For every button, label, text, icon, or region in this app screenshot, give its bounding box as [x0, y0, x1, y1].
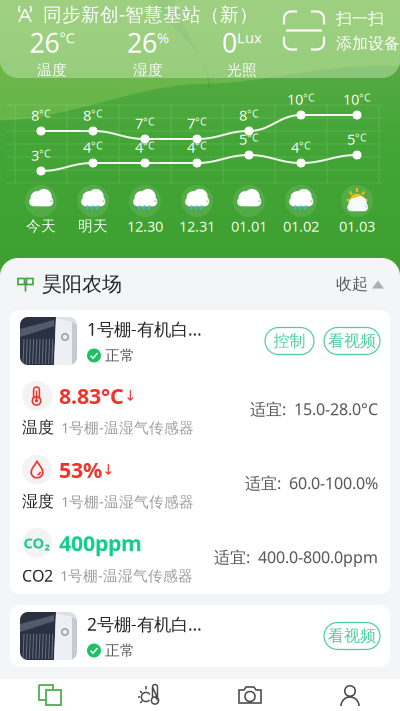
- staticText: 12.31: [179, 216, 215, 236]
- staticText: 8: [83, 105, 91, 125]
- staticText: 4: [135, 137, 143, 157]
- staticText: 正常: [105, 346, 135, 364]
- staticText: CO₂: [23, 533, 50, 553]
- staticText: 适宜: 400.0-800.0ppm: [214, 546, 378, 568]
- staticText: 温度: [37, 61, 67, 79]
- staticText: °C: [303, 90, 315, 104]
- staticText: 正常: [105, 641, 135, 659]
- button[interactable]: 环境: [100, 675, 200, 711]
- staticText: 同步新创-智慧基站（新）: [43, 2, 258, 26]
- staticText: 5: [347, 129, 355, 149]
- staticText: 添加设备: [336, 33, 400, 53]
- staticText: 扫一扫: [336, 9, 384, 28]
- staticText: 3: [31, 145, 39, 165]
- staticText: 控制: [273, 331, 305, 351]
- staticText: ↓: [102, 461, 114, 478]
- staticText: 2号棚-有机白…: [87, 612, 202, 635]
- staticText: °C: [195, 114, 207, 128]
- button[interactable]: 扫一扫: [281, 5, 400, 57]
- button[interactable]: 首页: [0, 675, 100, 711]
- staticText: 8.83°C: [59, 381, 124, 410]
- staticText: °C: [143, 138, 155, 152]
- staticText: %: [157, 28, 169, 47]
- staticText: 26: [29, 25, 59, 60]
- staticText: 26: [127, 25, 157, 60]
- button[interactable]: 监控: [200, 675, 300, 711]
- staticText: 53%: [59, 455, 102, 484]
- button[interactable]: 看视频: [324, 622, 380, 649]
- staticText: 4: [83, 137, 91, 157]
- button[interactable]: 收起: [336, 270, 384, 298]
- staticText: °C: [143, 114, 155, 128]
- staticText: 适宜: 15.0-28.0°C: [250, 398, 378, 420]
- staticText: °C: [247, 106, 259, 120]
- staticText: 7: [135, 113, 143, 133]
- staticText: 1号棚-有机白…: [87, 317, 202, 340]
- staticText: 01.02: [283, 216, 319, 236]
- staticText: 明天: [78, 217, 108, 235]
- staticText: 8: [31, 105, 39, 125]
- staticText: °C: [39, 106, 51, 120]
- button[interactable]: 看视频: [324, 327, 380, 354]
- staticText: 温度: [22, 418, 54, 437]
- staticText: °C: [59, 28, 74, 47]
- staticText: °C: [91, 106, 103, 120]
- staticText: CO2: [22, 565, 53, 586]
- staticText: 4: [187, 137, 195, 157]
- staticText: °C: [39, 146, 51, 160]
- staticText: 今天: [26, 217, 56, 235]
- staticText: 昊阳农场: [42, 272, 122, 296]
- staticText: 8: [239, 105, 247, 125]
- staticText: °C: [247, 130, 259, 144]
- staticText: 1号棚-温湿气传感器: [61, 492, 194, 511]
- staticText: 400ppm: [59, 529, 142, 557]
- staticText: 5: [239, 129, 247, 149]
- staticText: 适宜: 60.0-100.0%: [245, 472, 378, 494]
- button[interactable]: 我的: [300, 675, 400, 711]
- staticText: 01.03: [339, 216, 375, 236]
- button[interactable]: 控制: [265, 327, 314, 354]
- staticText: 10: [287, 89, 303, 109]
- staticText: Lux: [237, 28, 262, 47]
- staticText: 湿度: [133, 61, 163, 79]
- staticText: 湿度: [22, 492, 54, 511]
- staticText: 0: [222, 25, 237, 60]
- staticText: 10: [343, 89, 359, 109]
- staticText: 1号棚-温湿气传感器: [60, 566, 193, 585]
- staticText: °C: [359, 90, 371, 104]
- staticText: 4: [291, 137, 299, 157]
- staticText: 看视频: [328, 331, 376, 351]
- staticText: 光照: [227, 61, 257, 79]
- staticText: °C: [299, 138, 311, 152]
- staticText: 看视频: [328, 626, 376, 646]
- staticText: °C: [195, 138, 207, 152]
- staticText: 01.01: [231, 216, 267, 236]
- staticText: 收起: [336, 274, 368, 294]
- staticText: °C: [91, 138, 103, 152]
- staticText: 1号棚-温湿气传感器: [61, 418, 194, 437]
- staticText: ↓: [124, 387, 136, 404]
- staticText: °C: [355, 130, 367, 144]
- staticText: 7: [187, 113, 195, 133]
- staticText: 12.30: [127, 216, 163, 236]
